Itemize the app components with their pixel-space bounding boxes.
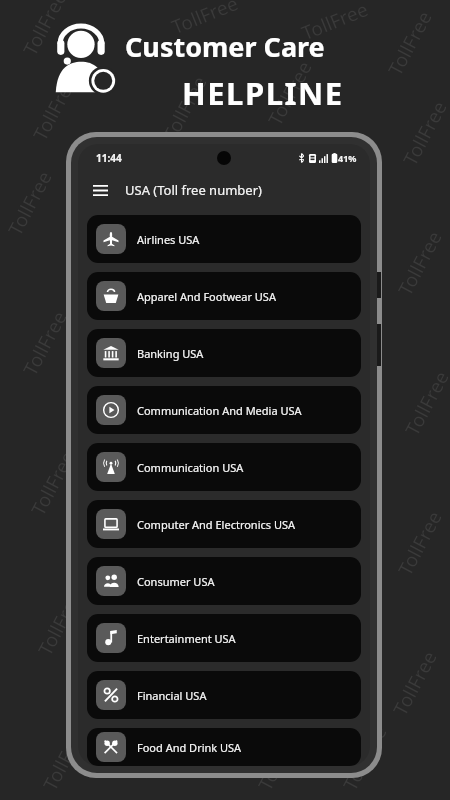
staticText: TollFree <box>168 0 242 40</box>
staticText: 11:44 <box>96 151 122 165</box>
button[interactable]: Financial USA <box>87 671 361 719</box>
staticText: TollFree <box>17 306 73 380</box>
staticText: Banking USA <box>137 346 204 361</box>
staticText: TollFree <box>37 721 93 795</box>
staticText: TollFree <box>252 721 308 795</box>
staticText: TollFree <box>32 586 88 660</box>
staticText: Consumer USA <box>137 574 215 589</box>
staticText: TollFree <box>157 71 213 145</box>
staticText: Communication And Media USA <box>137 403 302 418</box>
button[interactable]: Banking USA <box>87 329 361 377</box>
staticText: Computer And Electronics USA <box>137 517 296 532</box>
button[interactable]: Communication USA <box>87 443 361 491</box>
button[interactable]: Entertainment USA <box>87 614 361 662</box>
button[interactable]: Communication And Media USA <box>87 386 361 434</box>
staticText: TollFree <box>337 721 393 795</box>
staticText: Food And Drink USA <box>137 740 242 755</box>
staticText: TollFree <box>399 366 450 440</box>
staticText: TollFree <box>2 166 58 240</box>
staticText: TollFree <box>397 96 450 170</box>
staticText: TollFree <box>25 446 81 520</box>
button[interactable]: Open navigation menu <box>87 177 113 203</box>
button[interactable]: Consumer USA <box>87 557 361 605</box>
button[interactable]: Computer And Electronics USA <box>87 500 361 548</box>
staticText: Communication USA <box>137 460 244 475</box>
button[interactable]: Food And Drink USA <box>87 728 361 766</box>
staticText: TollFree <box>392 506 448 580</box>
staticText: TollFree <box>387 646 443 720</box>
staticText: USA (Toll free number) <box>125 181 262 199</box>
staticText: TollFree <box>17 0 73 60</box>
staticText: TollFree <box>262 56 318 130</box>
staticText: TollFree <box>127 711 183 785</box>
staticText: TollFree <box>392 226 448 300</box>
staticText: TollFree <box>298 0 372 46</box>
staticText: Airlines USA <box>137 232 200 247</box>
staticText: Apparel And Footwear USA <box>137 289 276 304</box>
button[interactable]: Airlines USA <box>87 215 361 263</box>
staticText: Entertainment USA <box>137 631 236 646</box>
staticText: 41% <box>338 152 357 164</box>
staticText: TollFree <box>27 71 83 145</box>
staticText: Financial USA <box>137 688 207 703</box>
button[interactable]: Apparel And Footwear USA <box>87 272 361 320</box>
staticText: TollFree <box>382 6 438 80</box>
staticText: Customer Care <box>125 28 325 65</box>
staticText: HELPLINE <box>182 72 344 114</box>
